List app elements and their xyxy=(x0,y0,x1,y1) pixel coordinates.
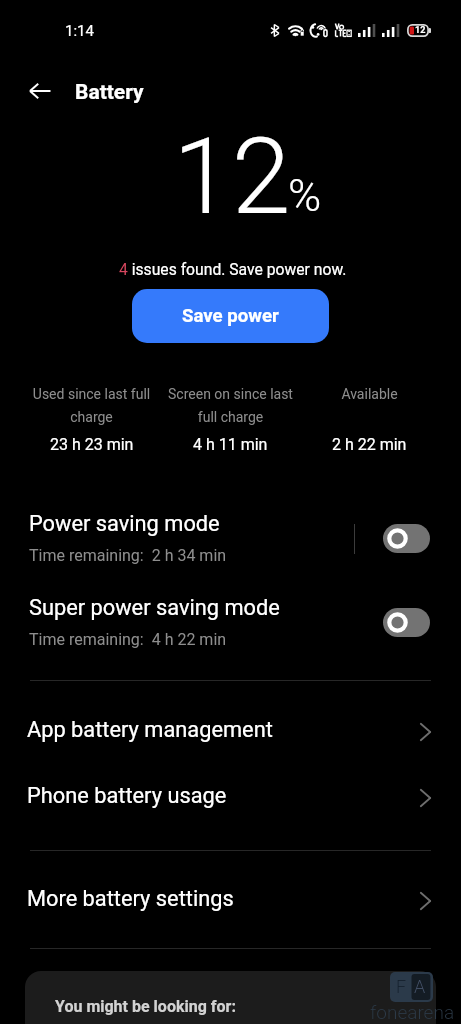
staticText: 2 h 22 min xyxy=(332,435,407,454)
staticText: Available xyxy=(341,386,398,402)
button[interactable]: More battery settings xyxy=(0,881,461,933)
staticText: Used since last full charge xyxy=(22,386,161,426)
staticText: 4 h 11 min xyxy=(193,435,268,454)
staticText: More battery settings xyxy=(27,886,234,912)
staticText: App battery management xyxy=(27,717,273,743)
button[interactable]: Super power saving mode xyxy=(0,590,461,656)
staticText: Battery xyxy=(75,80,144,105)
button[interactable]: Phone battery usage xyxy=(0,778,461,830)
staticText: Save power xyxy=(182,305,279,327)
button[interactable]: Power saving mode xyxy=(0,506,461,572)
staticText: A xyxy=(414,976,426,997)
staticText: 23 h 23 min xyxy=(50,435,134,454)
staticText: Phone battery usage xyxy=(27,783,227,809)
staticText: 4 issues found. Save power now. xyxy=(119,260,347,278)
staticText: fonearena xyxy=(370,1001,455,1023)
button[interactable]: Save power xyxy=(132,289,329,343)
staticText: Super power saving mode xyxy=(29,595,280,621)
staticText: Time remaining: 2 h 34 min xyxy=(29,546,227,565)
staticText: 1:14 xyxy=(65,22,94,40)
staticText: Time remaining: 4 h 22 min xyxy=(29,630,227,649)
staticText: 12 xyxy=(415,25,426,36)
staticText: You might be looking for: xyxy=(55,997,236,1016)
button[interactable]: Back xyxy=(22,73,58,109)
button[interactable]: App battery management xyxy=(0,712,461,764)
staticText: % xyxy=(288,169,322,222)
staticText: Screen on since last full charge xyxy=(161,386,300,426)
button[interactable]: Toggle off xyxy=(383,524,430,553)
staticText: F xyxy=(396,976,407,997)
button[interactable]: Toggle off xyxy=(383,608,430,637)
staticText: 12 xyxy=(173,115,291,239)
staticText: Power saving mode xyxy=(29,511,220,537)
